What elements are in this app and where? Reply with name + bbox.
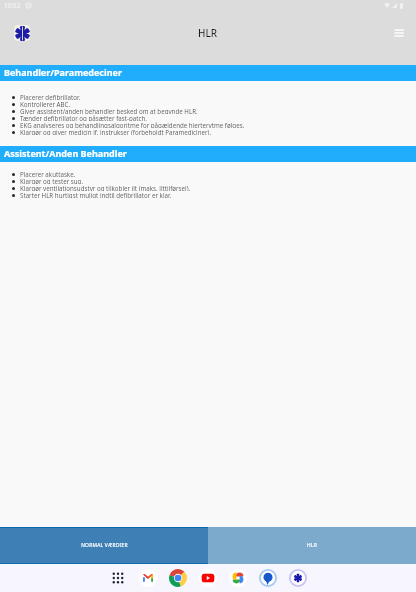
button[interactable]: Photos	[229, 569, 247, 587]
staticText: Behandler/Paramedeciner	[4, 66, 122, 78]
staticText: Giver assistent/anden behandler besked o…	[20, 107, 198, 114]
staticText: Tænder defibrillator og påsætter fast-pa…	[20, 114, 147, 121]
staticText: HLR	[307, 542, 317, 549]
staticText: HLR	[198, 26, 218, 40]
button[interactable]: Chrome	[169, 569, 187, 587]
button[interactable]: HLR	[208, 527, 416, 564]
button[interactable]: All apps	[109, 569, 127, 587]
staticText: Starter HLR hurtigst muligt indtil defib…	[20, 191, 172, 198]
staticText: Kontrollerer ABC.	[20, 100, 71, 107]
staticText: Assistent/Anden Behandler	[4, 147, 127, 159]
button[interactable]: Menu	[387, 21, 411, 45]
staticText: Placerer akuttaske.	[20, 170, 76, 177]
staticText: Placerer defibrillator.	[20, 93, 81, 100]
button[interactable]: Messages	[259, 569, 277, 587]
button[interactable]: NORMAL VÆRDIER	[0, 528, 208, 563]
button[interactable]: Gmail	[139, 569, 157, 587]
staticText: Klargør og tester sug.	[20, 177, 84, 184]
staticText: NORMAL VÆRDIER	[81, 542, 128, 549]
button[interactable]: App icon	[14, 25, 30, 41]
button[interactable]: HLR app	[289, 569, 307, 587]
staticText: Klargør og giver medicin jf. instrukser …	[20, 128, 212, 135]
staticText: 10:52	[4, 1, 21, 10]
staticText: EKG analyseres og behandlingsalgoritme f…	[20, 121, 245, 128]
staticText: Klargør ventilationsudstyr og tilkobler …	[20, 184, 191, 191]
button[interactable]: YouTube	[199, 569, 217, 587]
